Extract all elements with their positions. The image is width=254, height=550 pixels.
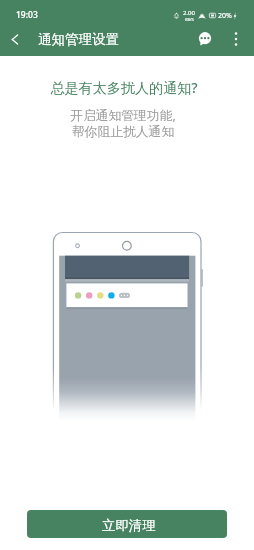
staticText: KB/S [185,17,194,22]
staticText: 立即清理 [102,517,156,534]
button[interactable]: Feedback [192,26,218,52]
staticText: 开启通知管理功能, 帮你阻止扰人通知 [0,106,250,140]
staticText: 19:03 [16,9,38,21]
button[interactable]: Back [0,25,28,53]
staticText: 2.00 [183,9,195,17]
staticText: 通知管理设置 [38,31,119,48]
button[interactable]: 立即清理 [27,510,227,538]
staticText: 总是有太多扰人的通知? [0,78,251,97]
staticText: 20% [218,11,232,21]
button[interactable]: More options [223,26,249,52]
